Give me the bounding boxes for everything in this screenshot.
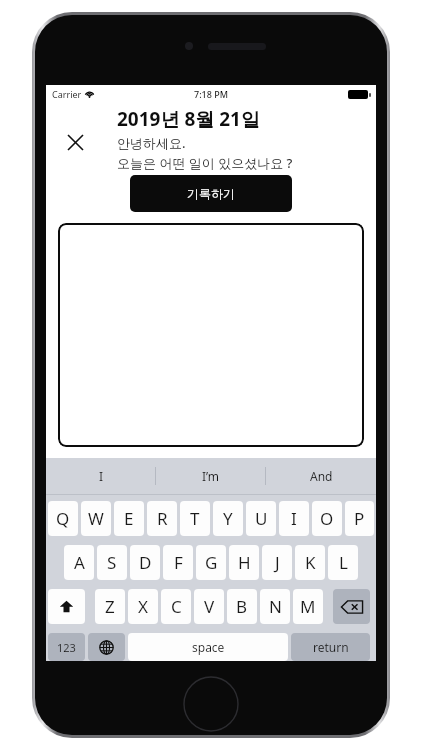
staticText: 123 — [57, 640, 76, 655]
button[interactable]: Shift — [48, 589, 85, 624]
staticText: F — [174, 551, 183, 574]
staticText: J — [275, 551, 280, 574]
button[interactable]: Backspace — [333, 589, 370, 624]
button[interactable]: X — [128, 589, 158, 624]
button[interactable]: And — [266, 458, 376, 494]
staticText: S — [107, 551, 117, 574]
button[interactable]: return — [291, 633, 370, 661]
button[interactable] — [58, 223, 364, 447]
button[interactable]: Z — [95, 589, 125, 624]
staticText: I — [99, 468, 104, 484]
button[interactable]: T — [180, 501, 210, 536]
staticText: C — [171, 595, 182, 618]
staticText: I’m — [202, 468, 220, 484]
button[interactable]: U — [246, 501, 276, 536]
button[interactable]: space — [128, 633, 288, 661]
staticText: I — [291, 507, 297, 530]
staticText: L — [339, 551, 348, 574]
staticText: M — [300, 595, 316, 618]
button[interactable]: C — [161, 589, 191, 624]
button[interactable]: J — [262, 545, 292, 580]
button[interactable]: O — [312, 501, 342, 536]
button[interactable]: Y — [213, 501, 243, 536]
staticText: Carrier — [52, 88, 82, 100]
staticText: And — [310, 468, 333, 484]
staticText: W — [88, 507, 104, 530]
staticText: 안녕하세요. — [117, 134, 186, 152]
staticText: U — [255, 507, 268, 530]
button[interactable]: N — [260, 589, 290, 624]
button[interactable]: L — [328, 545, 358, 580]
staticText: X — [138, 595, 148, 618]
button[interactable]: K — [295, 545, 325, 580]
button[interactable]: 기록하기 — [130, 175, 292, 212]
button[interactable]: M — [293, 589, 323, 624]
button[interactable]: V — [194, 589, 224, 624]
button[interactable]: A — [64, 545, 94, 580]
button[interactable]: 123 — [48, 633, 85, 661]
staticText: B — [236, 595, 248, 618]
staticText: space — [192, 639, 225, 655]
staticText: V — [204, 595, 215, 618]
staticText: Y — [223, 507, 233, 530]
button[interactable]: Switch keyboard — [88, 633, 125, 661]
button[interactable]: E — [114, 501, 144, 536]
staticText: D — [139, 551, 152, 574]
staticText: 기록하기 — [187, 186, 235, 201]
staticText: T — [190, 507, 200, 530]
button[interactable]: D — [130, 545, 160, 580]
staticText: H — [238, 551, 251, 574]
button[interactable]: P — [345, 501, 374, 536]
staticText: P — [354, 507, 365, 530]
staticText: R — [157, 507, 168, 530]
staticText: return — [313, 639, 349, 655]
button[interactable]: F — [163, 545, 193, 580]
button[interactable]: Close — [60, 127, 90, 157]
button[interactable]: I’m — [156, 458, 266, 494]
staticText: Q — [56, 507, 70, 530]
staticText: G — [205, 551, 218, 574]
button[interactable]: Q — [48, 501, 78, 536]
staticText: N — [269, 595, 282, 618]
staticText: 오늘은 어떤 일이 있으셨나요 ? — [117, 154, 293, 172]
button[interactable]: W — [81, 501, 111, 536]
button[interactable]: G — [196, 545, 226, 580]
button[interactable]: R — [147, 501, 177, 536]
staticText: K — [305, 551, 316, 574]
button[interactable]: I — [46, 458, 156, 494]
staticText: E — [124, 507, 134, 530]
button[interactable]: B — [227, 589, 257, 624]
staticText: 7:18 PM — [194, 88, 228, 100]
staticText: Z — [105, 595, 115, 618]
button[interactable]: H — [229, 545, 259, 580]
button[interactable]: S — [97, 545, 127, 580]
staticText: 2019년 8월 21일 — [117, 106, 260, 132]
button[interactable]: I — [279, 501, 309, 536]
staticText: O — [320, 507, 334, 530]
staticText: A — [74, 551, 85, 574]
